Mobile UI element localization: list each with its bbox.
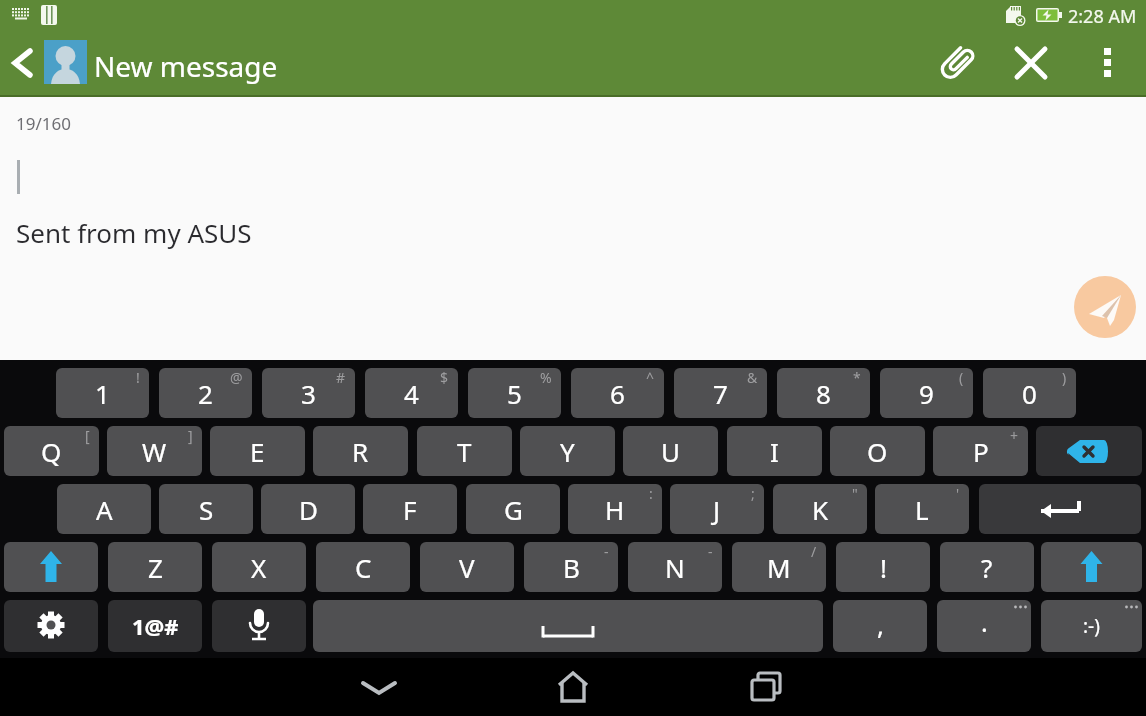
staticText: & <box>747 368 758 387</box>
button[interactable]: 1 <box>56 368 149 418</box>
button[interactable]: P <box>933 426 1028 476</box>
button[interactable]: 0 <box>983 368 1076 418</box>
staticText: 4 <box>404 376 419 411</box>
button[interactable]: 3 <box>262 368 355 418</box>
button[interactable] <box>1041 542 1142 592</box>
button[interactable]: 2 <box>159 368 252 418</box>
staticText: 9 <box>919 376 934 411</box>
staticText: 3 <box>301 376 316 411</box>
button[interactable] <box>355 663 403 711</box>
staticText: ! <box>136 368 140 387</box>
button[interactable]: H <box>568 484 662 534</box>
staticText: . <box>981 605 988 639</box>
button[interactable]: 7 <box>674 368 767 418</box>
button[interactable]: 8 <box>777 368 870 418</box>
staticText: F <box>403 492 417 527</box>
staticText: 6 <box>610 376 625 411</box>
staticText: New message <box>94 47 278 85</box>
staticText: B <box>563 550 580 585</box>
button[interactable] <box>2 44 40 82</box>
button[interactable] <box>549 663 597 711</box>
staticText: C <box>355 550 372 585</box>
staticText: D <box>299 492 318 527</box>
staticText: L <box>915 492 929 527</box>
staticText: 1@# <box>132 611 179 641</box>
button[interactable]: 4 <box>365 368 458 418</box>
button[interactable]: L <box>875 484 969 534</box>
button[interactable]: 9 <box>880 368 973 418</box>
staticText: Z <box>148 550 163 585</box>
staticText: T <box>457 434 472 469</box>
staticText: R <box>352 434 369 469</box>
button[interactable] <box>979 484 1141 534</box>
staticText: * <box>853 368 861 387</box>
button[interactable]: ? <box>940 542 1034 592</box>
staticText: 0 <box>1022 376 1037 411</box>
button[interactable]: M <box>732 542 826 592</box>
button[interactable]: :-) <box>1041 600 1142 652</box>
button[interactable]: . <box>937 600 1031 652</box>
staticText: K <box>812 492 829 527</box>
staticText: ^ <box>646 368 655 387</box>
button[interactable]: W <box>107 426 202 476</box>
staticText: ] <box>188 426 193 445</box>
button[interactable]: 6 <box>571 368 664 418</box>
staticText: O <box>867 434 888 469</box>
button[interactable]: ! <box>836 542 930 592</box>
staticText: + <box>1010 426 1019 445</box>
button[interactable]: I <box>727 426 822 476</box>
staticText: P <box>973 434 989 469</box>
button[interactable] <box>212 600 306 652</box>
staticText: M <box>767 550 791 585</box>
button[interactable]: C <box>316 542 410 592</box>
staticText: X <box>251 550 267 585</box>
button[interactable] <box>934 41 978 85</box>
button[interactable]: Z <box>108 542 202 592</box>
button[interactable]: S <box>159 484 253 534</box>
button[interactable]: Y <box>520 426 615 476</box>
staticText: Y <box>560 434 575 469</box>
button[interactable]: U <box>623 426 718 476</box>
staticText: U <box>661 434 681 469</box>
staticText: ' <box>956 484 960 503</box>
button[interactable] <box>1009 41 1053 85</box>
button[interactable] <box>742 663 790 711</box>
staticText: G <box>504 492 523 527</box>
button[interactable] <box>44 40 87 84</box>
staticText: N <box>665 550 685 585</box>
button[interactable]: A <box>57 484 151 534</box>
button[interactable] <box>313 600 823 652</box>
button[interactable] <box>1074 276 1136 338</box>
staticText: A <box>96 492 113 527</box>
button[interactable]: T <box>417 426 512 476</box>
button[interactable]: V <box>420 542 514 592</box>
staticText: [ <box>85 426 90 445</box>
staticText: ; <box>751 484 755 503</box>
button[interactable]: O <box>830 426 925 476</box>
button[interactable]: 5 <box>468 368 561 418</box>
button[interactable] <box>4 600 98 652</box>
staticText: 7 <box>713 376 728 411</box>
button[interactable]: 1@# <box>108 600 202 652</box>
staticText: E <box>250 434 265 469</box>
button[interactable]: N <box>628 542 722 592</box>
button[interactable]: J <box>670 484 764 534</box>
button[interactable]: Q <box>4 426 99 476</box>
staticText: H <box>605 492 625 527</box>
button[interactable] <box>1036 426 1142 476</box>
button[interactable]: B <box>524 542 618 592</box>
staticText: 8 <box>816 376 831 411</box>
button[interactable]: R <box>313 426 408 476</box>
button[interactable]: X <box>212 542 306 592</box>
staticText: 5 <box>507 376 522 411</box>
staticText: J <box>713 492 721 527</box>
button[interactable]: G <box>466 484 560 534</box>
button[interactable]: K <box>773 484 867 534</box>
button[interactable] <box>1085 41 1129 85</box>
button[interactable]: , <box>833 600 927 652</box>
button[interactable]: F <box>363 484 457 534</box>
button[interactable]: D <box>261 484 355 534</box>
button[interactable] <box>4 542 98 592</box>
staticText: ) <box>1062 368 1067 387</box>
button[interactable]: E <box>210 426 305 476</box>
